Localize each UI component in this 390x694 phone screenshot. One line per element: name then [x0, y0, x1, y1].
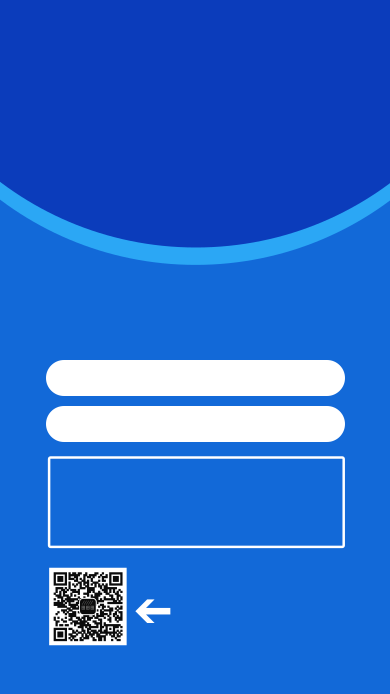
button[interactable]: QR code	[49, 568, 127, 645]
button[interactable]: Message box	[49, 457, 344, 547]
button[interactable]: Text field	[46, 360, 345, 396]
button[interactable]: Text field	[46, 406, 345, 442]
button[interactable]: Back	[135, 599, 170, 623]
